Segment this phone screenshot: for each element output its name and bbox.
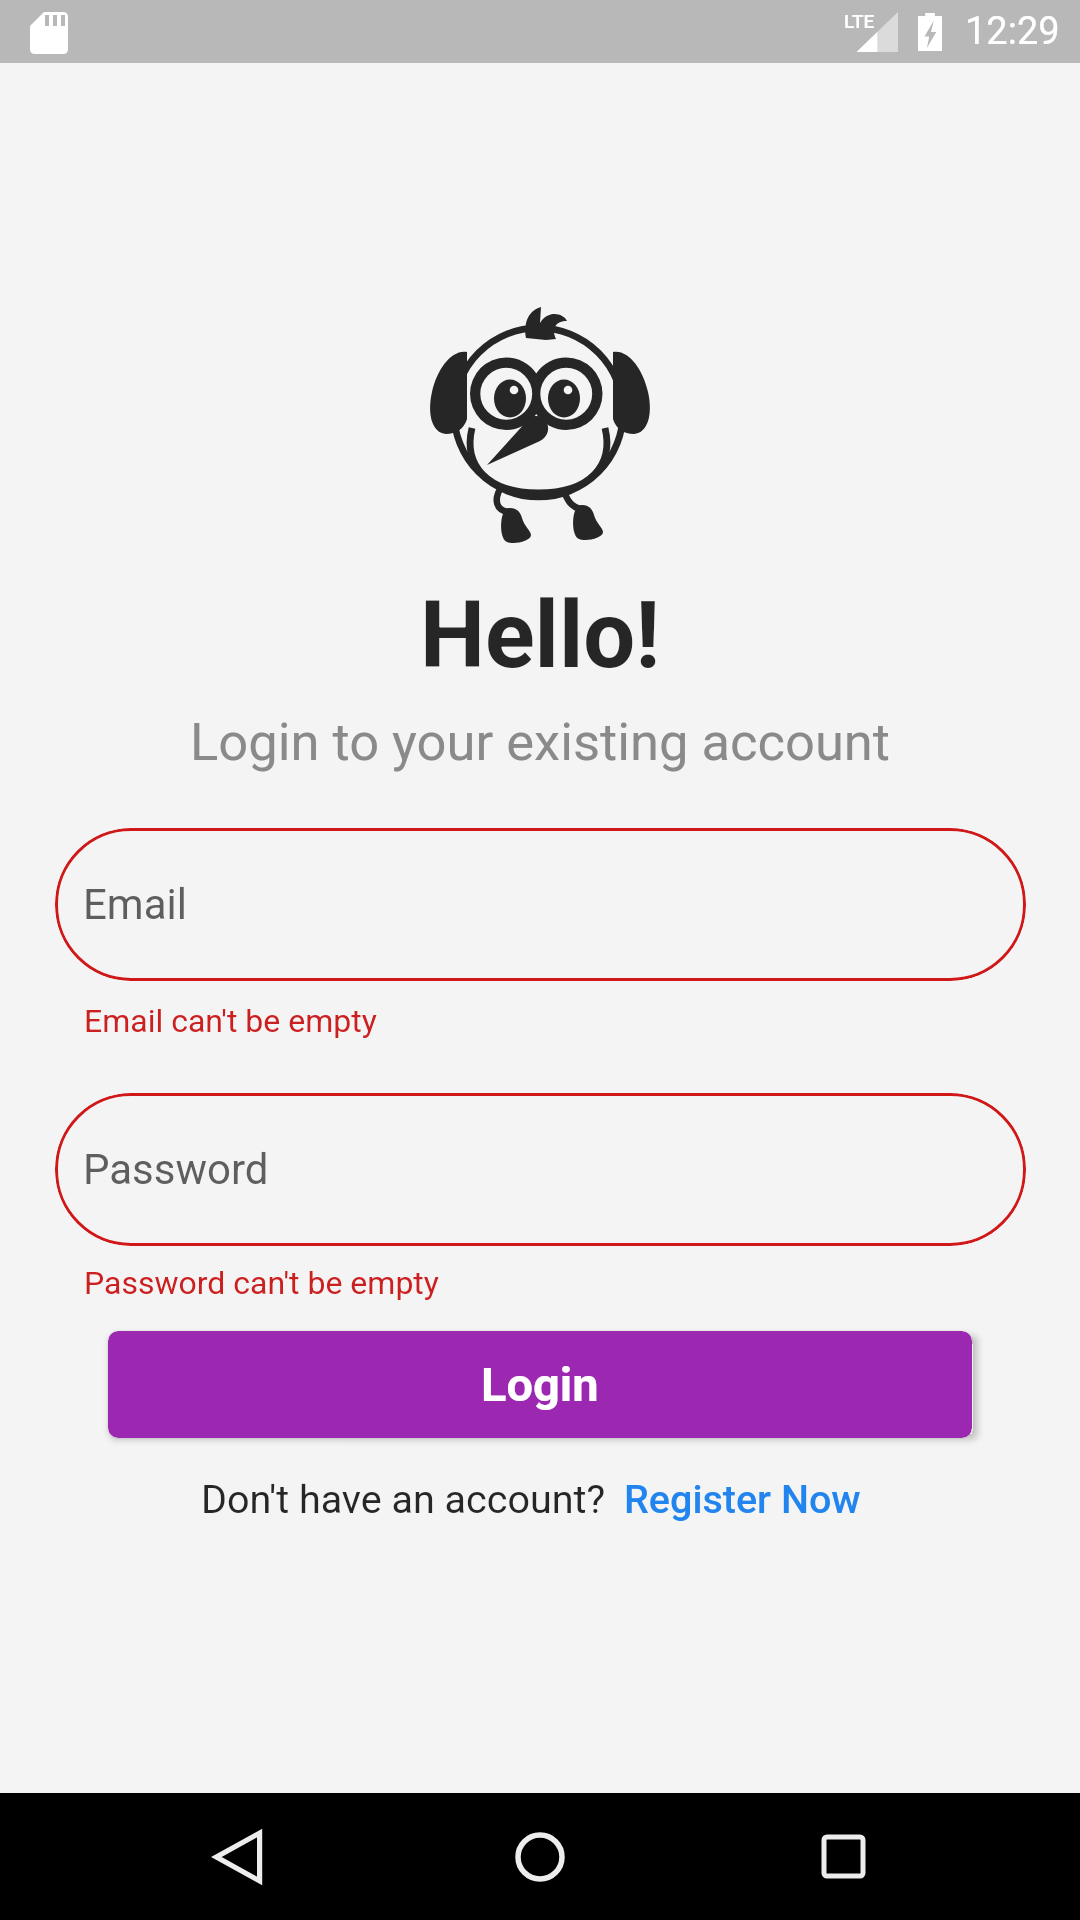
staticText: Register Now: [624, 1476, 861, 1522]
button[interactable]: Register Now: [624, 1476, 861, 1522]
staticText: Password can't be empty: [84, 1264, 439, 1302]
button[interactable]: Back: [173, 1793, 303, 1920]
button[interactable]: Recents: [778, 1793, 908, 1920]
button[interactable]: Home: [475, 1793, 605, 1920]
button[interactable]: Login: [108, 1331, 972, 1438]
staticText: Email: [83, 880, 187, 929]
button[interactable]: Password: [55, 1093, 1026, 1246]
button[interactable]: Email: [55, 828, 1026, 981]
staticText: Email can't be empty: [84, 1002, 377, 1040]
staticText: Login to your existing account: [0, 711, 1080, 773]
staticText: 12:29: [965, 9, 1060, 54]
staticText: Don't have an account?: [201, 1476, 606, 1522]
staticText: Hello!: [0, 582, 1080, 690]
staticText: Password: [83, 1145, 269, 1194]
staticText: LTE: [844, 10, 875, 32]
staticText: Login: [481, 1357, 599, 1412]
